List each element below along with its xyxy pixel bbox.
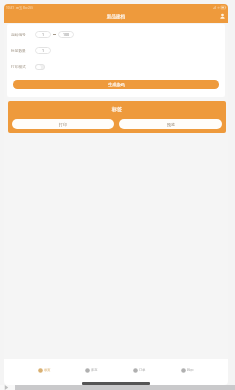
staticText: 我的 [187, 368, 194, 372]
button[interactable]: 1 [35, 31, 51, 38]
staticText: 生成条码 [108, 82, 125, 87]
staticText: 100 [63, 32, 70, 37]
staticText: 库存 [91, 368, 98, 372]
staticText: 打印 [59, 122, 67, 127]
button[interactable]: 预览 [119, 119, 222, 129]
button[interactable]: 1 [35, 47, 51, 54]
staticText: 订单 [139, 368, 146, 372]
button[interactable]: 打印 [12, 119, 114, 129]
staticText: 10:31 周五 8月2日 [6, 6, 34, 10]
button[interactable]: 首页 [21, 359, 68, 381]
staticText: 标签数量 [11, 48, 26, 53]
staticText: 新品建档 [4, 14, 228, 20]
button[interactable]: 100 [58, 31, 74, 38]
staticText: 1 [42, 48, 45, 53]
button[interactable]: Account [219, 13, 226, 20]
staticText: 预览 [167, 122, 175, 127]
staticText: 首页 [44, 368, 51, 372]
staticText: 标签 [8, 106, 226, 113]
staticText: 起始编号 [11, 32, 26, 37]
staticText: 1 [42, 32, 45, 37]
button[interactable]: Toggle print mode [35, 64, 45, 70]
button[interactable]: 生成条码 [13, 80, 219, 89]
button[interactable]: 我的 [163, 359, 211, 381]
button[interactable]: 订单 [115, 359, 163, 381]
button[interactable]: 库存 [68, 359, 115, 381]
staticText: 打印模式 [11, 64, 26, 69]
